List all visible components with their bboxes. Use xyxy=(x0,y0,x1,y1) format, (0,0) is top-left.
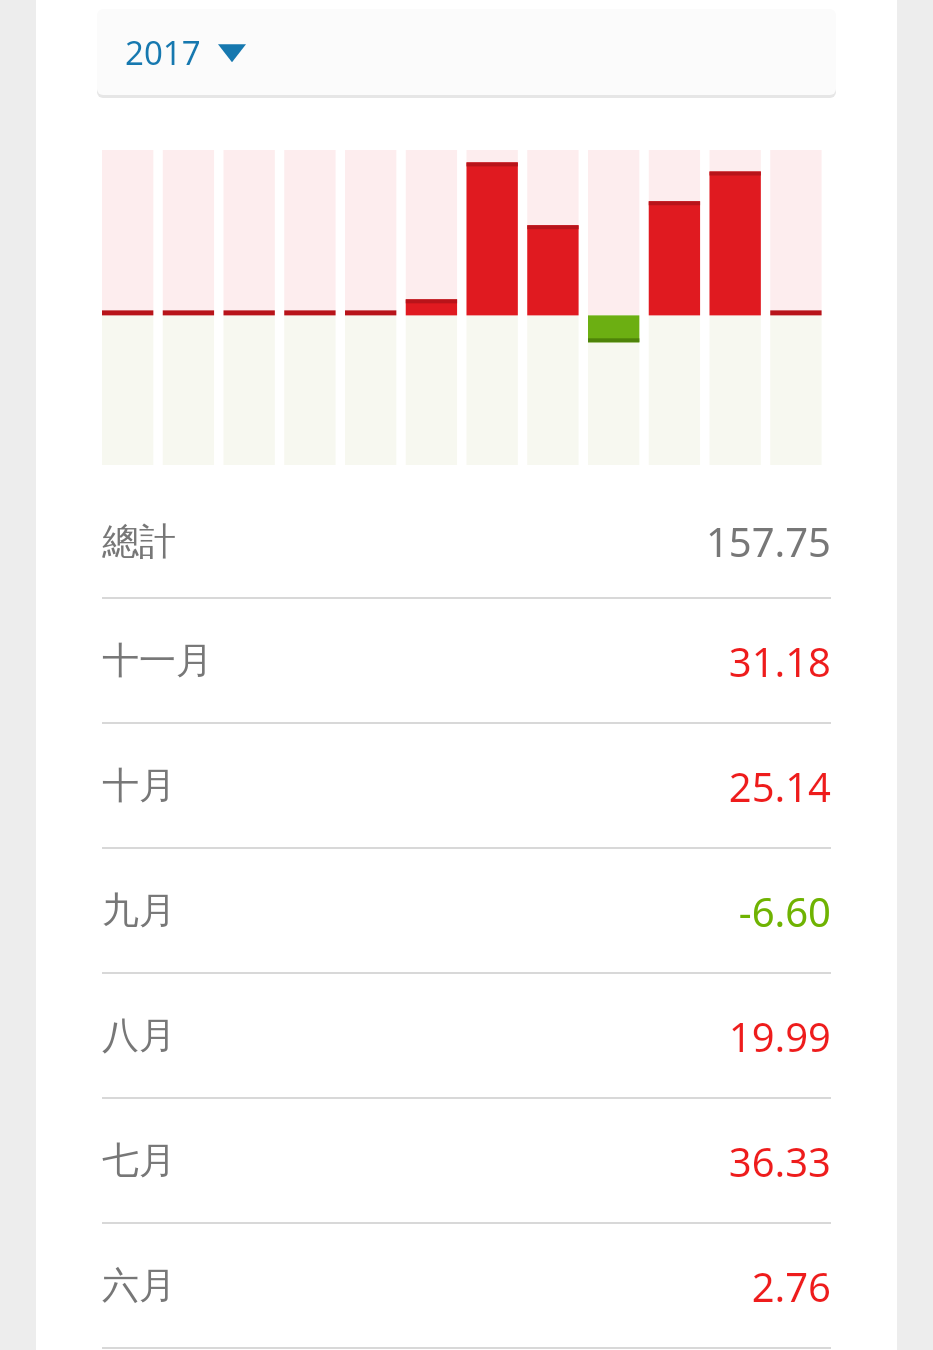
staticText: 2017 xyxy=(125,30,201,75)
staticText: 36.33 xyxy=(728,1134,831,1188)
staticText: 19.99 xyxy=(728,1009,831,1063)
button[interactable]: 2017 xyxy=(97,9,836,95)
button[interactable]: 九月 xyxy=(36,849,897,972)
staticText: 六月 xyxy=(102,1262,176,1309)
staticText: 157.75 xyxy=(705,514,831,568)
staticText: 十月 xyxy=(102,762,176,809)
button[interactable]: 六月 xyxy=(36,1224,897,1347)
button[interactable]: 十一月 xyxy=(36,599,897,722)
staticText: 25.14 xyxy=(728,759,831,813)
staticText: 七月 xyxy=(102,1137,176,1184)
staticText: 八月 xyxy=(102,1012,176,1059)
staticText: 九月 xyxy=(102,887,176,934)
button[interactable]: 總計 xyxy=(36,485,897,597)
staticText: -6.60 xyxy=(738,884,831,938)
button[interactable]: 八月 xyxy=(36,974,897,1097)
button[interactable]: 十月 xyxy=(36,724,897,847)
button[interactable]: 七月 xyxy=(36,1099,897,1222)
staticText: 十一月 xyxy=(102,637,213,684)
staticText: 2.76 xyxy=(751,1259,831,1313)
staticText: 31.18 xyxy=(728,634,831,688)
staticText: 總計 xyxy=(102,518,176,565)
